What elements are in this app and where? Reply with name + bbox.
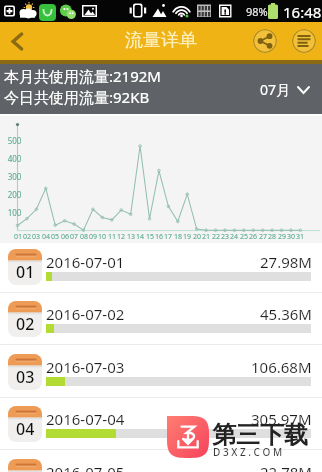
- staticText: 02: [17, 232, 37, 242]
- staticText: 400: [2, 153, 27, 164]
- staticText: 500: [2, 135, 27, 146]
- staticText: 01: [16, 261, 35, 283]
- button[interactable]: 01: [0, 243, 322, 295]
- staticText: 27.98M: [260, 252, 312, 272]
- button[interactable]: Menu: [292, 29, 316, 53]
- button[interactable]: 03: [0, 348, 322, 400]
- staticText: 03: [16, 366, 35, 388]
- staticText: 23: [215, 232, 235, 242]
- staticText: D 3 X Z . C O M: [213, 445, 283, 459]
- staticText: 15: [140, 232, 160, 242]
- staticText: 27: [253, 232, 273, 242]
- staticText: 09: [83, 232, 103, 242]
- staticText: 16:48: [283, 2, 322, 22]
- staticText: 16: [149, 232, 169, 242]
- staticText: 05: [45, 232, 65, 242]
- staticText: 28: [262, 232, 282, 242]
- staticText: 07月: [260, 80, 291, 99]
- staticText: 20: [187, 232, 207, 242]
- staticText: 22: [206, 232, 226, 242]
- button[interactable]: 04: [0, 400, 322, 452]
- staticText: 100: [2, 207, 27, 218]
- staticText: 45.36M: [260, 304, 312, 324]
- staticText: 106.68M: [251, 357, 312, 377]
- staticText: 2016-07-05: [46, 462, 125, 472]
- staticText: 2016-07-03: [46, 357, 125, 377]
- staticText: 26: [243, 232, 263, 242]
- button[interactable]: 07月: [260, 80, 309, 99]
- staticText: 200: [2, 189, 27, 200]
- staticText: 17: [158, 232, 178, 242]
- staticText: 31: [290, 232, 310, 242]
- staticText: 14: [130, 232, 150, 242]
- staticText: 19: [177, 232, 197, 242]
- staticText: 98%: [246, 4, 268, 19]
- button[interactable]: Share: [253, 29, 277, 53]
- staticText: 12: [111, 232, 131, 242]
- button[interactable]: 05: [0, 453, 322, 472]
- staticText: 02: [16, 313, 35, 335]
- staticText: 300: [2, 171, 27, 182]
- staticText: 本月共使用流量:2192M: [4, 66, 161, 86]
- staticText: 03: [26, 232, 46, 242]
- staticText: 08: [74, 232, 94, 242]
- staticText: 2016-07-04: [46, 409, 125, 429]
- staticText: 04: [36, 232, 56, 242]
- staticText: 01: [8, 232, 28, 242]
- staticText: 305.97M: [251, 409, 312, 429]
- button[interactable]: 02: [0, 295, 322, 347]
- staticText: 18: [168, 232, 188, 242]
- staticText: 07: [64, 232, 84, 242]
- staticText: 04: [16, 418, 35, 440]
- staticText: 06: [55, 232, 75, 242]
- staticText: 24: [224, 232, 244, 242]
- button[interactable]: Back: [0, 22, 34, 60]
- staticText: 22.78M: [260, 462, 312, 472]
- staticText: 21: [196, 232, 216, 242]
- staticText: 2016-07-02: [46, 304, 125, 324]
- staticText: 第三下载: [212, 420, 308, 450]
- staticText: 25: [234, 232, 254, 242]
- staticText: 今日共使用流量:92KB: [4, 87, 150, 107]
- staticText: 29: [272, 232, 292, 242]
- staticText: 30: [281, 232, 301, 242]
- staticText: 流量详单: [125, 29, 197, 52]
- staticText: 13: [121, 232, 141, 242]
- staticText: 10: [92, 232, 112, 242]
- staticText: 11: [102, 232, 122, 242]
- staticText: 2016-07-01: [46, 252, 125, 272]
